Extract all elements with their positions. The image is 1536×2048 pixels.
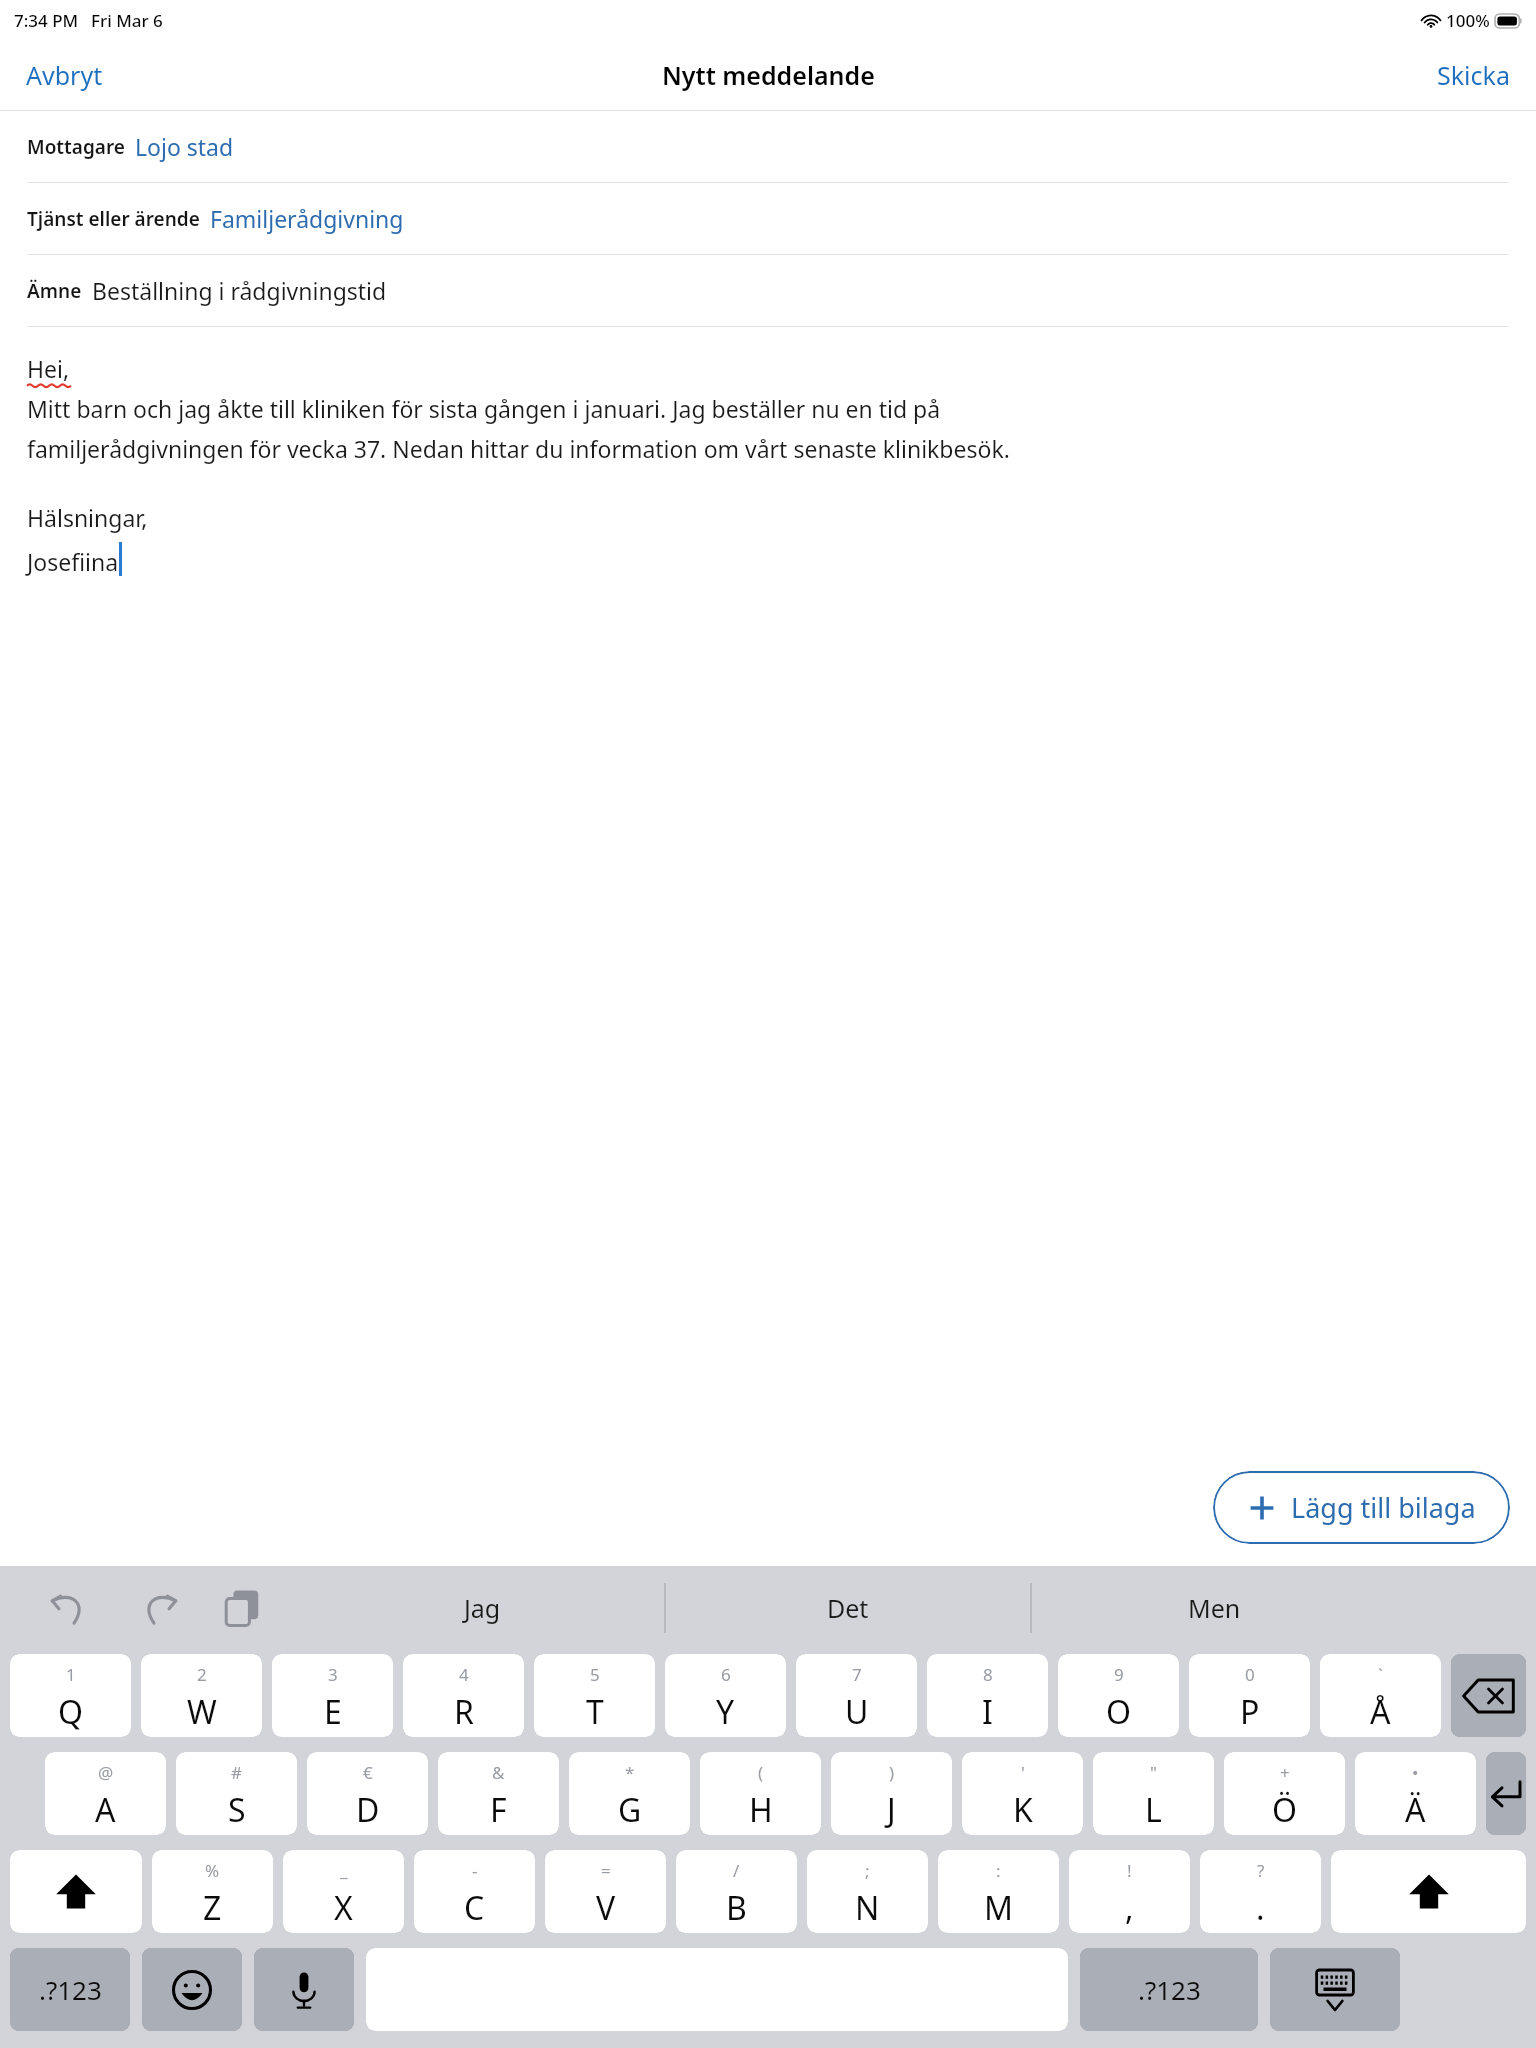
button[interactable]: Skicka <box>1411 48 1536 102</box>
button[interactable]: € <box>307 1752 428 1835</box>
staticText: Y <box>716 1690 735 1734</box>
staticText: @ <box>98 1761 114 1784</box>
button[interactable]: Mottagare <box>0 111 1536 183</box>
staticText: ) <box>889 1761 895 1784</box>
button[interactable]: Shift <box>10 1850 142 1933</box>
staticText: ; <box>865 1859 870 1882</box>
staticText: Lojo stad <box>135 131 234 162</box>
button[interactable]: 0 <box>1189 1654 1310 1737</box>
button[interactable]: 5 <box>534 1654 655 1737</box>
button[interactable]: Undo <box>42 1581 96 1635</box>
staticText: A <box>95 1788 116 1832</box>
button[interactable]: 8 <box>927 1654 1048 1737</box>
button[interactable]: / <box>676 1850 797 1933</box>
staticText: 7 <box>852 1663 862 1686</box>
staticText: L <box>1145 1788 1162 1832</box>
staticText: F <box>490 1788 507 1832</box>
button[interactable]: Return <box>1486 1752 1526 1835</box>
staticText: , <box>1125 1886 1134 1930</box>
button[interactable]: 3 <box>272 1654 393 1737</box>
button[interactable]: 4 <box>403 1654 524 1737</box>
staticText: Nytt meddelande <box>662 58 875 92</box>
staticText: I <box>982 1690 993 1734</box>
staticText: familjerådgivningen för vecka 37. Nedan … <box>27 433 1010 464</box>
staticText: : <box>996 1859 1001 1882</box>
staticText: 6 <box>721 1663 731 1686</box>
button[interactable]: ( <box>700 1752 821 1835</box>
staticText: / <box>733 1859 740 1882</box>
button[interactable]: • <box>1355 1752 1476 1835</box>
staticText: * <box>625 1761 635 1784</box>
staticText: M <box>984 1886 1014 1930</box>
staticText: S <box>228 1788 246 1832</box>
staticText: D <box>356 1788 380 1832</box>
staticText: O <box>1106 1690 1131 1734</box>
staticText: Jag <box>464 1591 501 1625</box>
staticText: G <box>618 1788 642 1832</box>
button[interactable]: _ <box>283 1850 404 1933</box>
button[interactable]: # <box>176 1752 297 1835</box>
staticText: W <box>187 1690 217 1734</box>
button[interactable]: Hide keyboard <box>1270 1948 1400 2031</box>
staticText: Q <box>58 1690 83 1734</box>
button[interactable]: Jag <box>300 1569 664 1647</box>
button[interactable]: Men <box>1032 1569 1396 1647</box>
button[interactable]: Det <box>666 1569 1030 1647</box>
staticText: - <box>472 1859 478 1882</box>
button[interactable]: Redo <box>132 1581 186 1635</box>
staticText: ! <box>1127 1859 1132 1882</box>
button[interactable]: Lägg till bilaga <box>1213 1471 1510 1544</box>
button[interactable]: 2 <box>141 1654 262 1737</box>
button[interactable]: Shift <box>1331 1850 1526 1933</box>
button[interactable]: ) <box>831 1752 952 1835</box>
staticText: • <box>1412 1761 1419 1784</box>
button[interactable]: = <box>545 1850 666 1933</box>
button[interactable]: 6 <box>665 1654 786 1737</box>
button[interactable]: Dictation <box>254 1948 354 2031</box>
button[interactable]: @ <box>45 1752 166 1835</box>
button[interactable]: " <box>1093 1752 1214 1835</box>
button[interactable]: .?123 <box>1080 1948 1258 2031</box>
staticText: Beställning i rådgivningstid <box>92 275 387 306</box>
button[interactable]: ' <box>962 1752 1083 1835</box>
staticText: U <box>845 1690 869 1734</box>
button[interactable]: 1 <box>10 1654 131 1737</box>
staticText: E <box>324 1690 342 1734</box>
button[interactable]: - <box>414 1850 535 1933</box>
button[interactable]: Backspace <box>1451 1654 1526 1737</box>
staticText: 0 <box>1245 1663 1255 1686</box>
button[interactable]: + <box>1224 1752 1345 1835</box>
button[interactable]: : <box>938 1850 1059 1933</box>
button[interactable]: Avbryt <box>0 48 129 102</box>
button[interactable]: .?123 <box>10 1948 130 2031</box>
button[interactable]: % <box>152 1850 273 1933</box>
staticText: Hälsningar, <box>27 502 148 533</box>
button[interactable]: ; <box>807 1850 928 1933</box>
button[interactable]: Tjänst eller ärende <box>0 183 1536 255</box>
button[interactable]: & <box>438 1752 559 1835</box>
staticText: 5 <box>590 1663 600 1686</box>
button[interactable]: Paste <box>216 1581 270 1635</box>
button[interactable]: Ämne <box>0 255 1536 327</box>
staticText: 7:34 PM <box>14 9 79 32</box>
staticText: _ <box>340 1859 348 1882</box>
staticText: Ö <box>1272 1788 1297 1832</box>
staticText: & <box>492 1761 505 1784</box>
staticText: Å <box>1370 1690 1391 1734</box>
button[interactable]: * <box>569 1752 690 1835</box>
staticText: B <box>726 1886 747 1930</box>
button[interactable]: 9 <box>1058 1654 1179 1737</box>
button[interactable]: Emoji <box>142 1948 242 2031</box>
button[interactable]: ! <box>1069 1850 1190 1933</box>
staticText: Mitt barn och jag åkte till kliniken för… <box>27 393 941 424</box>
staticText: # <box>231 1761 242 1784</box>
button[interactable]: 7 <box>796 1654 917 1737</box>
button[interactable]: ? <box>1200 1850 1321 1933</box>
staticText: € <box>363 1761 373 1784</box>
staticText: ? <box>1257 1859 1265 1882</box>
staticText: Josefiina <box>27 546 119 577</box>
button[interactable]: ` <box>1320 1654 1441 1737</box>
staticText: Z <box>203 1886 222 1930</box>
staticText: Lägg till bilaga <box>1291 1489 1476 1526</box>
